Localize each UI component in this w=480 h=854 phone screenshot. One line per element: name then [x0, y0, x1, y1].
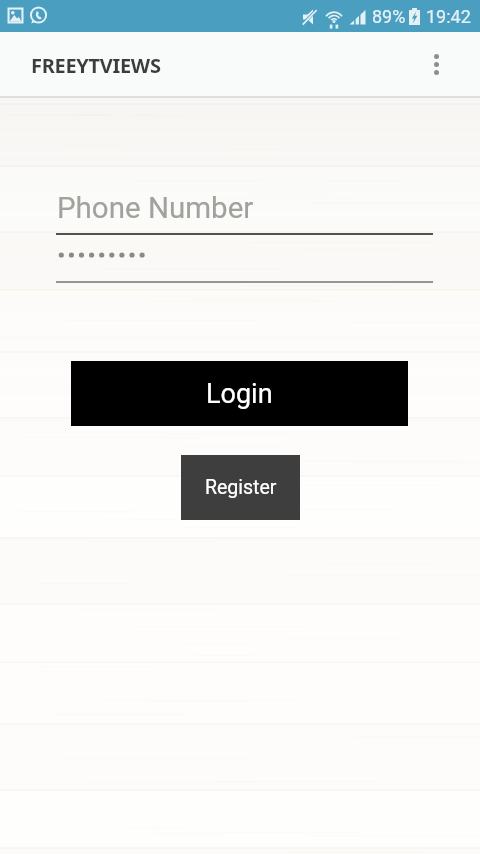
staticText: Login [206, 378, 273, 410]
staticText: Phone Number [57, 191, 254, 226]
staticText: 89% [372, 6, 406, 27]
staticText: FREEYTVIEWS [31, 52, 161, 79]
button[interactable]: Phone Number [56, 186, 433, 235]
staticText: Register [205, 476, 277, 499]
button[interactable]: Register [181, 455, 300, 520]
button[interactable] [56, 240, 433, 283]
staticText: 19:42 [426, 6, 471, 27]
button[interactable]: Login [71, 361, 408, 426]
button[interactable]: More options [419, 47, 453, 81]
